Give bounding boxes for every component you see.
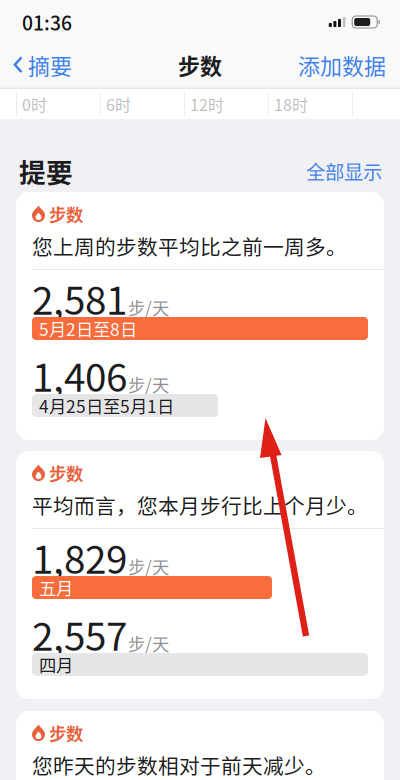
staticText: 四月 [39, 652, 73, 677]
staticText: 添加数据 [298, 49, 386, 81]
staticText: 步数 [49, 720, 83, 746]
staticText: 4月25日至5月1日 [39, 393, 174, 418]
staticText: 步/天 [128, 295, 169, 320]
staticText: 01:36 [22, 8, 72, 36]
staticText: 2,557 [32, 606, 127, 662]
staticText: 您昨天的步数相对于前天减少。 [32, 750, 326, 780]
staticText: 步数 [49, 460, 83, 486]
button[interactable]: 全部显示 [306, 154, 382, 188]
staticText: 步/天 [128, 631, 169, 656]
staticText: 2,581 [32, 270, 127, 326]
staticText: 全部显示 [306, 157, 382, 185]
staticText: 步/天 [128, 372, 169, 397]
staticText: 步数 [178, 49, 222, 81]
staticText: 步/天 [128, 554, 169, 579]
staticText: 摘要 [28, 49, 72, 81]
staticText: 5月2日至8日 [39, 316, 137, 341]
staticText: 18时 [274, 92, 308, 116]
staticText: 1,406 [32, 347, 127, 403]
button[interactable]: 添加数据 [290, 44, 400, 86]
staticText: 您上周的步数平均比之前一周多。 [32, 231, 347, 261]
staticText: 6时 [106, 92, 131, 116]
staticText: 提要 [19, 152, 73, 190]
staticText: 平均而言，您本月步行比上个月少。 [32, 490, 368, 520]
staticText: 五月 [39, 575, 73, 600]
staticText: 0时 [22, 92, 47, 116]
staticText: 1,829 [32, 529, 127, 585]
staticText: 步数 [49, 201, 83, 227]
staticText: 12时 [190, 92, 224, 116]
button[interactable]: 摘要 [0, 44, 110, 86]
